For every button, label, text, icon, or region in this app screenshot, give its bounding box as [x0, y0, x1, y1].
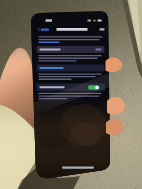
button[interactable]: Phone held in hand showing settings scre… [0, 0, 142, 189]
